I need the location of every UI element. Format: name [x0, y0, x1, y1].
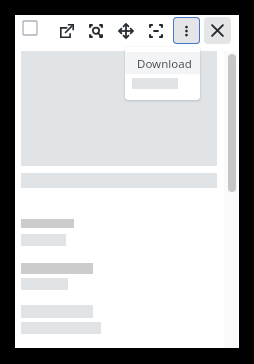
button[interactable]: [125, 78, 200, 89]
button[interactable]: Download: [125, 52, 200, 74]
button[interactable]: Move: [119, 24, 133, 38]
button[interactable]: Close: [204, 17, 231, 44]
button[interactable]: Fit to screen: [149, 24, 163, 38]
staticText: Download: [137, 56, 192, 72]
button[interactable]: Scan and zoom: [89, 24, 103, 38]
button[interactable]: More options: [173, 17, 200, 44]
button[interactable]: Open in new window: [60, 24, 74, 38]
button[interactable]: Select: [23, 21, 37, 35]
